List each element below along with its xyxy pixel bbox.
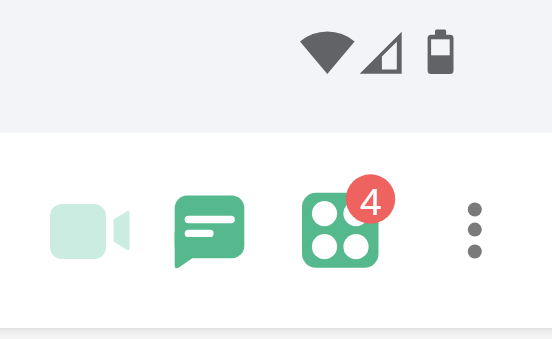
button[interactable]: More options bbox=[450, 188, 500, 278]
button[interactable]: Video call bbox=[39, 188, 144, 278]
button[interactable]: Communities, 4 new bbox=[292, 183, 392, 278]
staticText: 4 bbox=[360, 175, 382, 223]
button[interactable]: New chat bbox=[165, 188, 255, 278]
